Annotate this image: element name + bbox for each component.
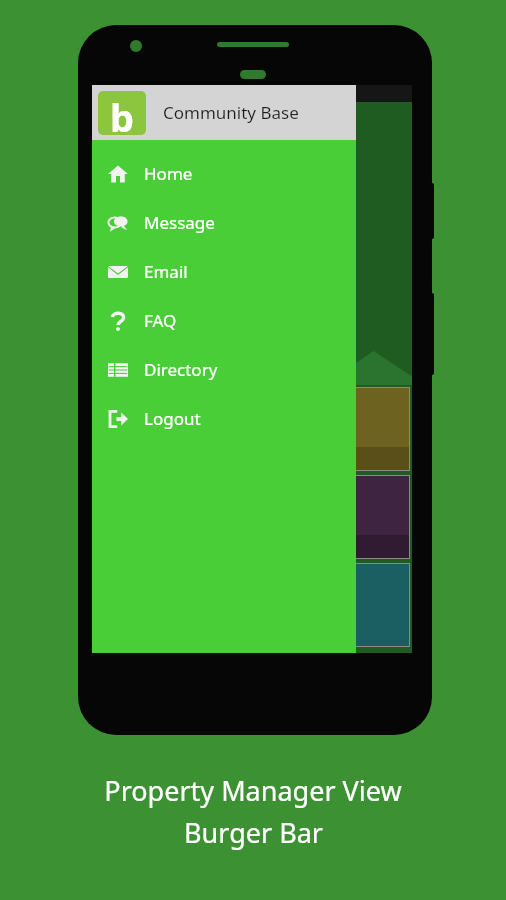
staticText: Community Base (163, 101, 299, 124)
staticText: Home (144, 162, 193, 185)
staticText: FAQ (144, 309, 177, 332)
button[interactable]: Email (92, 247, 356, 296)
button[interactable] (95, 476, 409, 558)
button[interactable] (95, 564, 409, 646)
button[interactable]: FAQ (92, 296, 356, 345)
staticText: Directory (144, 358, 218, 381)
staticText: Message (144, 211, 215, 234)
button[interactable]: Directory (92, 345, 356, 394)
staticText: Email (144, 260, 188, 283)
button[interactable]: Home (92, 149, 356, 198)
button[interactable] (95, 388, 409, 470)
button[interactable]: Message (92, 198, 356, 247)
staticText: Burger Bar (184, 814, 323, 851)
button[interactable]: Logout (92, 394, 356, 443)
staticText: Property Manager View (104, 772, 402, 809)
staticText: b (110, 91, 135, 135)
staticText: Logout (144, 407, 201, 430)
